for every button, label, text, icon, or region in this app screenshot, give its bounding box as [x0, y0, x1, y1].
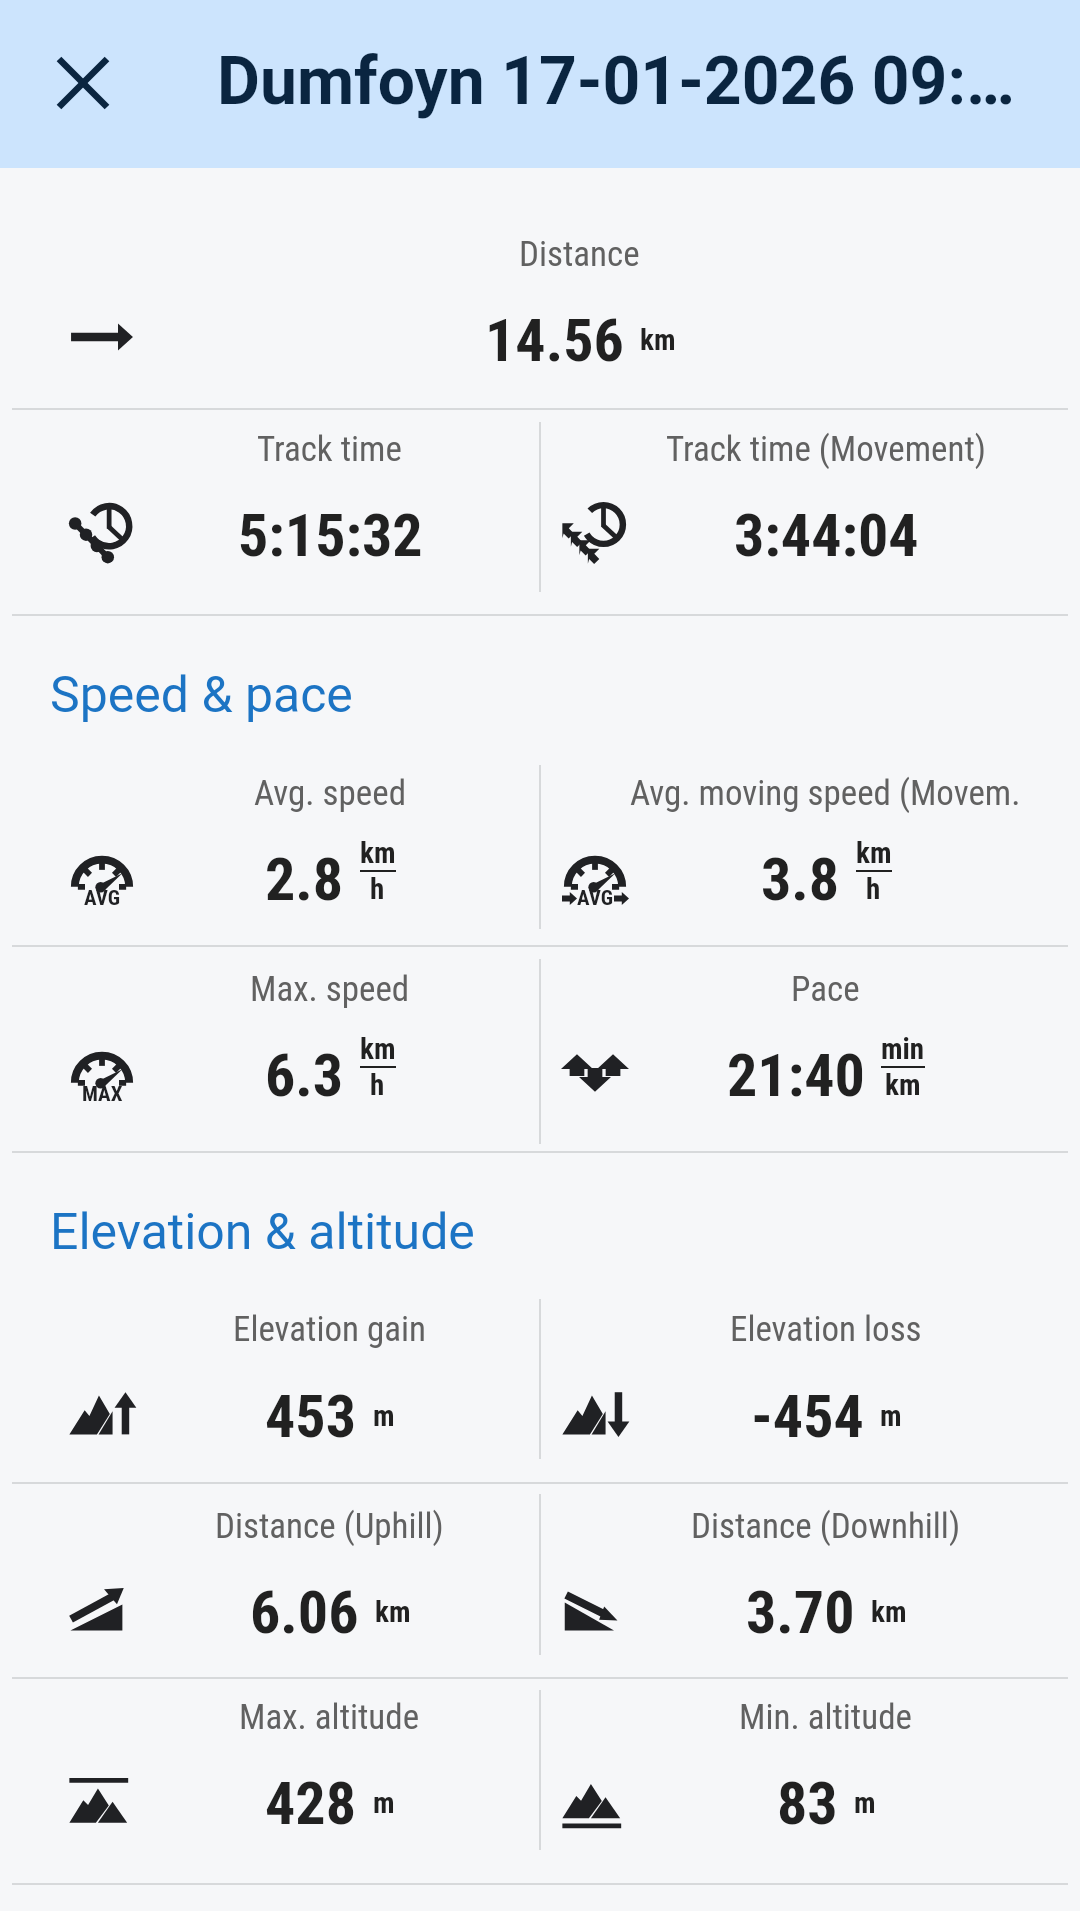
button[interactable]: [540, 1152, 1080, 1483]
button[interactable]: [540, 946, 1080, 1152]
staticText: 21:40: [727, 1040, 865, 1110]
staticText: km: [856, 836, 892, 870]
staticText: 3.8: [761, 844, 840, 914]
button[interactable]: [0, 1678, 540, 1884]
staticText: Pace: [791, 969, 860, 1010]
button[interactable]: [540, 615, 1080, 946]
staticText: MAX: [82, 1082, 123, 1107]
staticText: -454: [751, 1381, 864, 1451]
button[interactable]: Close: [0, 0, 166, 166]
staticText: km: [375, 1595, 411, 1629]
button[interactable]: [540, 1678, 1080, 1884]
staticText: Dumfoyn 17-01-2026 09:…: [217, 43, 1015, 120]
staticText: AVG: [577, 886, 614, 911]
staticText: min: [881, 1032, 925, 1066]
button[interactable]: [0, 409, 540, 615]
staticText: m: [373, 1399, 395, 1433]
staticText: Distance (Uphill): [215, 1506, 444, 1547]
button[interactable]: [0, 168, 1080, 409]
staticText: 2.8: [265, 844, 344, 914]
staticText: m: [880, 1399, 902, 1433]
staticText: Elevation & altitude: [50, 1203, 475, 1262]
staticText: km: [871, 1595, 907, 1629]
button[interactable]: [540, 1483, 1080, 1678]
staticText: Track time: [257, 429, 402, 470]
staticText: Distance: [519, 234, 640, 275]
staticText: Speed & pace: [50, 666, 353, 725]
staticText: h: [370, 872, 385, 906]
staticText: Avg. moving speed (Movem.: [630, 773, 1021, 814]
button[interactable]: [0, 1152, 540, 1483]
staticText: h: [370, 1068, 385, 1102]
staticText: 453: [265, 1381, 357, 1451]
staticText: 3:44:04: [734, 500, 919, 570]
button[interactable]: [0, 1483, 540, 1678]
staticText: km: [360, 1032, 396, 1066]
staticText: 428: [265, 1768, 357, 1838]
staticText: km: [640, 323, 676, 357]
staticText: AVG: [84, 886, 121, 911]
staticText: m: [854, 1786, 876, 1820]
staticText: 14.56: [485, 305, 624, 375]
staticText: h: [866, 872, 881, 906]
staticText: 6.3: [265, 1040, 344, 1110]
staticText: Min. altitude: [739, 1697, 912, 1738]
staticText: m: [373, 1786, 395, 1820]
button[interactable]: [0, 615, 540, 946]
staticText: Avg. speed: [254, 773, 406, 814]
staticText: Elevation gain: [233, 1309, 427, 1350]
staticText: 6.06: [250, 1577, 359, 1647]
button[interactable]: [540, 409, 1080, 615]
staticText: 3.70: [746, 1577, 855, 1647]
staticText: Max. speed: [250, 969, 410, 1010]
staticText: 5:15:32: [238, 500, 423, 570]
staticText: km: [885, 1068, 921, 1102]
staticText: Track time (Movement): [666, 429, 986, 470]
staticText: 83: [777, 1768, 838, 1838]
staticText: Elevation loss: [730, 1309, 922, 1350]
staticText: Distance (Downhill): [691, 1506, 961, 1547]
staticText: km: [360, 836, 396, 870]
staticText: Max. altitude: [239, 1697, 420, 1738]
button[interactable]: [0, 946, 540, 1152]
